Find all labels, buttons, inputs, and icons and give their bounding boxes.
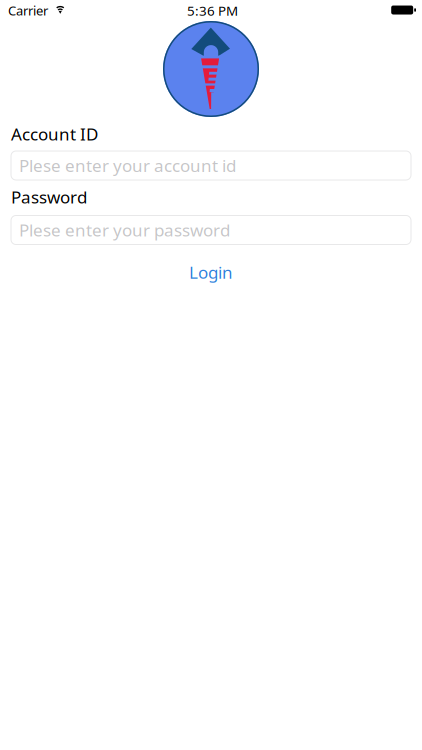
- staticText: 5:36 PM: [187, 1, 238, 20]
- staticText: Login: [189, 260, 233, 284]
- staticText: Plese enter your account id: [19, 154, 236, 177]
- staticText: Account ID: [11, 122, 98, 146]
- staticText: Carrier: [8, 2, 48, 19]
- staticText: Plese enter your password: [19, 218, 230, 242]
- button[interactable]: Login: [189, 260, 233, 284]
- staticText: Password: [11, 185, 87, 209]
